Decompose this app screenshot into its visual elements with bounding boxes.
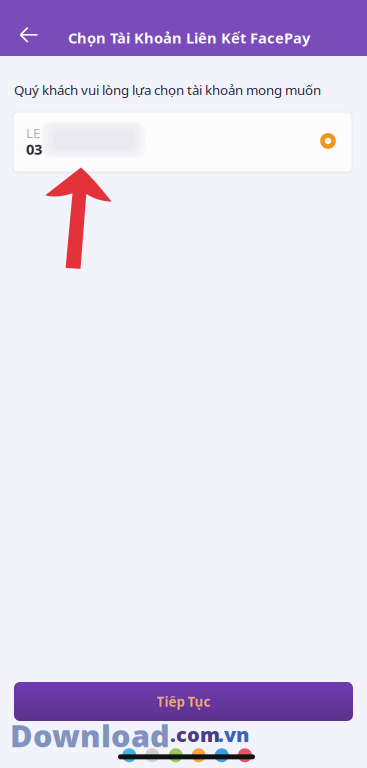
staticText: .com	[170, 721, 220, 748]
staticText: Quý khách vui lòng lựa chọn tài khoản mo…	[14, 81, 321, 99]
staticText: 03	[26, 139, 42, 159]
staticText: Chọn Tài Khoản Liên Kết FacePay	[68, 28, 310, 47]
button[interactable]: Back	[9, 16, 47, 54]
staticText: .vn	[218, 721, 249, 748]
button[interactable]: LE	[14, 113, 353, 173]
staticText: Tiếp Tục	[156, 693, 210, 710]
button[interactable]: Tiếp Tục	[14, 682, 353, 721]
staticText: Download	[10, 715, 170, 756]
staticText: LE	[26, 124, 40, 142]
